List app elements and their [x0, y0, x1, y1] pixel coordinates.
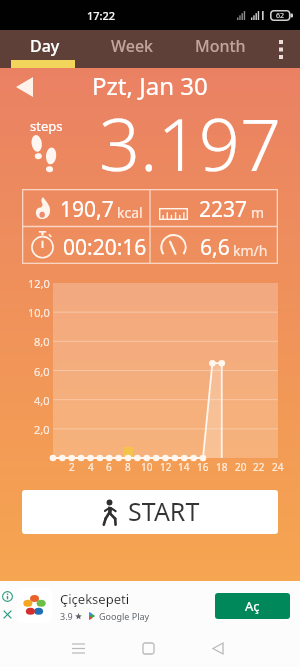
staticText: 2 [69, 460, 75, 474]
staticText: Pzt, Jan 30 [92, 69, 208, 102]
staticText: Çiçeksepeti [60, 590, 130, 608]
staticText: Week [111, 35, 154, 57]
button[interactable] [22, 189, 150, 226]
staticText: 62 [276, 11, 285, 21]
staticText: km/h [233, 241, 268, 260]
staticText: 10,0 [28, 305, 50, 320]
button[interactable]: Home [126, 630, 170, 667]
staticText: Day [30, 35, 60, 57]
staticText: 8 [125, 460, 131, 474]
button[interactable]: Previous day [8, 71, 40, 103]
staticText: 6,6 [200, 233, 230, 262]
staticText: 8,0 [34, 334, 50, 349]
staticText: kcal [117, 203, 143, 222]
button[interactable]: More options [266, 30, 296, 68]
staticText: 2,0 [34, 422, 50, 437]
staticText: 17:22 [87, 8, 116, 23]
button[interactable]: Month [178, 30, 262, 68]
staticText: 3.9 [60, 610, 73, 622]
button[interactable]: Back [196, 630, 240, 667]
button[interactable]: START [22, 490, 278, 534]
staticText: 20 [235, 460, 247, 474]
staticText: 12 [160, 460, 172, 474]
staticText: Google Play [99, 610, 150, 622]
staticText: 24 [272, 460, 284, 474]
staticText: 16 [197, 460, 209, 474]
staticText: 190,7 [60, 195, 114, 224]
staticText: 14 [178, 460, 190, 474]
button[interactable] [150, 226, 278, 263]
button[interactable]: Week [90, 30, 174, 68]
staticText: 6,0 [34, 364, 50, 379]
staticText: Aç [245, 597, 260, 615]
staticText: 18 [216, 460, 228, 474]
staticText: 4,0 [34, 393, 50, 408]
staticText: 10 [141, 460, 153, 474]
button[interactable] [22, 226, 150, 263]
staticText: m [251, 203, 265, 222]
button[interactable] [150, 189, 278, 226]
button[interactable]: Day [3, 30, 87, 68]
staticText: 12,0 [28, 276, 50, 291]
staticText: Month [195, 35, 246, 57]
button[interactable]: Recent apps [56, 630, 100, 667]
staticText: steps [30, 117, 63, 135]
staticText: START [128, 494, 200, 528]
staticText: 3.197 [87, 94, 293, 174]
staticText: 00:20:16 [63, 233, 147, 262]
staticText: 6 [106, 460, 112, 474]
staticText: 4 [88, 460, 94, 474]
staticText: 2237 [199, 195, 248, 224]
button[interactable]: Aç [215, 593, 290, 619]
staticText: 22 [253, 460, 265, 474]
